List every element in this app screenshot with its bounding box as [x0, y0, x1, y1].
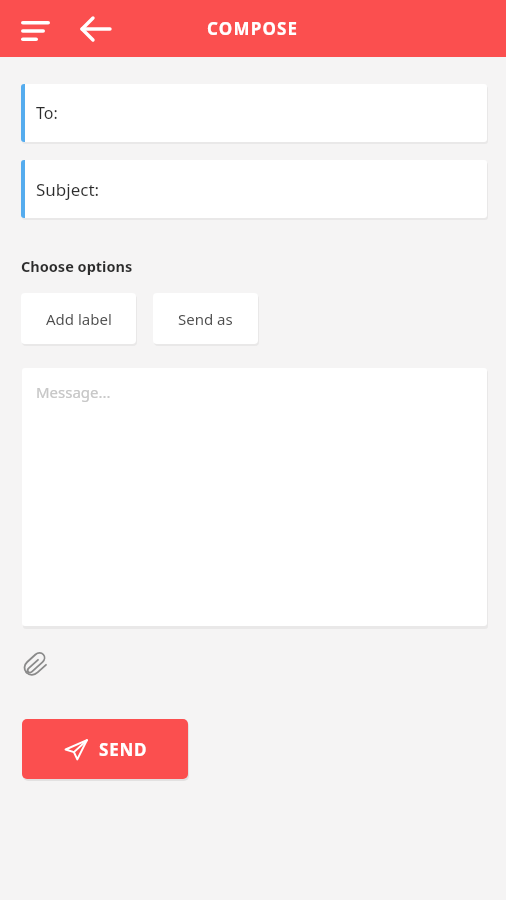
staticText: Subject: [36, 178, 100, 201]
button[interactable]: Back [74, 12, 118, 46]
button[interactable]: SEND [22, 719, 188, 779]
staticText: Message... [36, 382, 111, 402]
staticText: To: [36, 102, 58, 124]
button[interactable]: Attach file [17, 650, 53, 690]
staticText: Choose options [21, 256, 133, 276]
button[interactable]: Subject: [21, 160, 487, 218]
button[interactable]: Send as [153, 293, 258, 344]
staticText: SEND [99, 738, 148, 761]
staticText: COMPOSE [207, 17, 299, 40]
staticText: Send as [178, 309, 233, 329]
button[interactable]: To: [21, 84, 487, 142]
button[interactable]: Add label [21, 293, 136, 344]
staticText: Add label [46, 309, 112, 329]
button[interactable]: Menu [14, 12, 58, 46]
